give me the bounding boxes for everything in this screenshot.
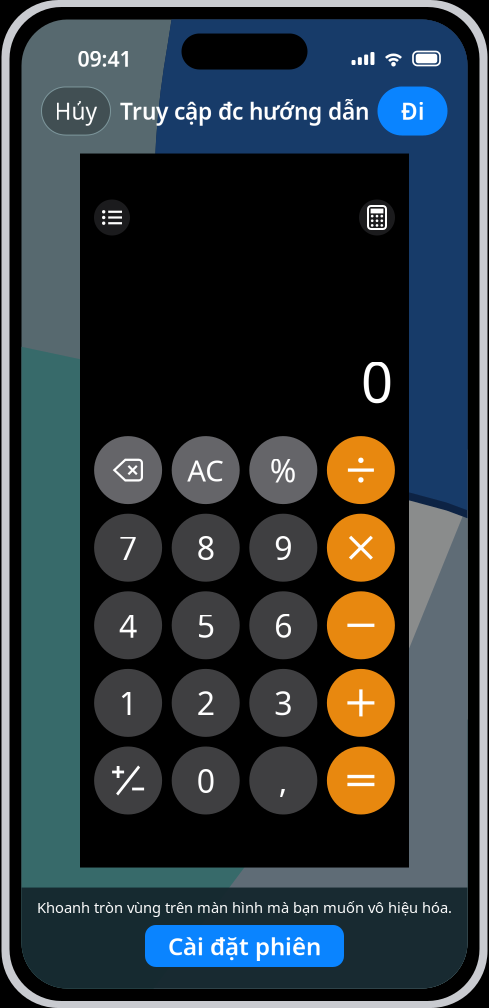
button[interactable]: Multiply [327,514,395,582]
staticText: 7 [119,526,137,569]
staticText: 9 [274,526,292,569]
staticText: 2 [197,682,215,724]
staticText: AC [187,451,224,490]
staticText: 0 [361,344,393,418]
button[interactable]: Percent [249,436,317,504]
staticText: 1 [119,682,137,724]
staticText: 09:41 [77,44,131,73]
button[interactable]: 7 [94,514,162,582]
staticText: , [279,759,288,802]
staticText: Khoanh tròn vùng trên màn hình mà bạn mu… [37,897,452,917]
staticText: % [270,449,297,491]
button[interactable]: Toggle sign [94,746,162,814]
button[interactable]: Plus [327,669,395,737]
button[interactable]: 4 [94,591,162,659]
staticText: 3 [274,682,292,724]
staticText: Cài đặt phiên [168,930,321,962]
staticText: 6 [274,604,292,647]
button[interactable]: History [94,199,130,235]
staticText: Truy cập đc hướng dẫn [120,96,369,126]
button[interactable]: 2 [172,669,240,737]
staticText: 0 [197,759,215,802]
button[interactable]: 6 [249,591,317,659]
staticText: 5 [197,604,215,647]
button[interactable]: Decimal [249,746,317,814]
button[interactable]: 5 [172,591,240,659]
button[interactable]: Minus [327,591,395,659]
button[interactable]: Divide [327,436,395,504]
staticText: Hủy [54,96,97,126]
button[interactable]: Delete [94,436,162,504]
button[interactable]: Equals [327,746,395,814]
button[interactable]: Hủy [41,87,110,135]
button[interactable]: 8 [172,514,240,582]
staticText: 4 [119,604,137,647]
button[interactable]: 0 [172,746,240,814]
button[interactable]: Cài đặt phiên [145,925,344,967]
staticText: Đi [401,96,424,126]
button[interactable]: Clear [172,436,240,504]
button[interactable]: 1 [94,669,162,737]
button[interactable]: 9 [249,514,317,582]
button[interactable]: Đi [377,86,447,135]
button[interactable]: Scientific calculator [359,199,395,235]
button[interactable]: 3 [249,669,317,737]
staticText: 8 [197,526,215,569]
